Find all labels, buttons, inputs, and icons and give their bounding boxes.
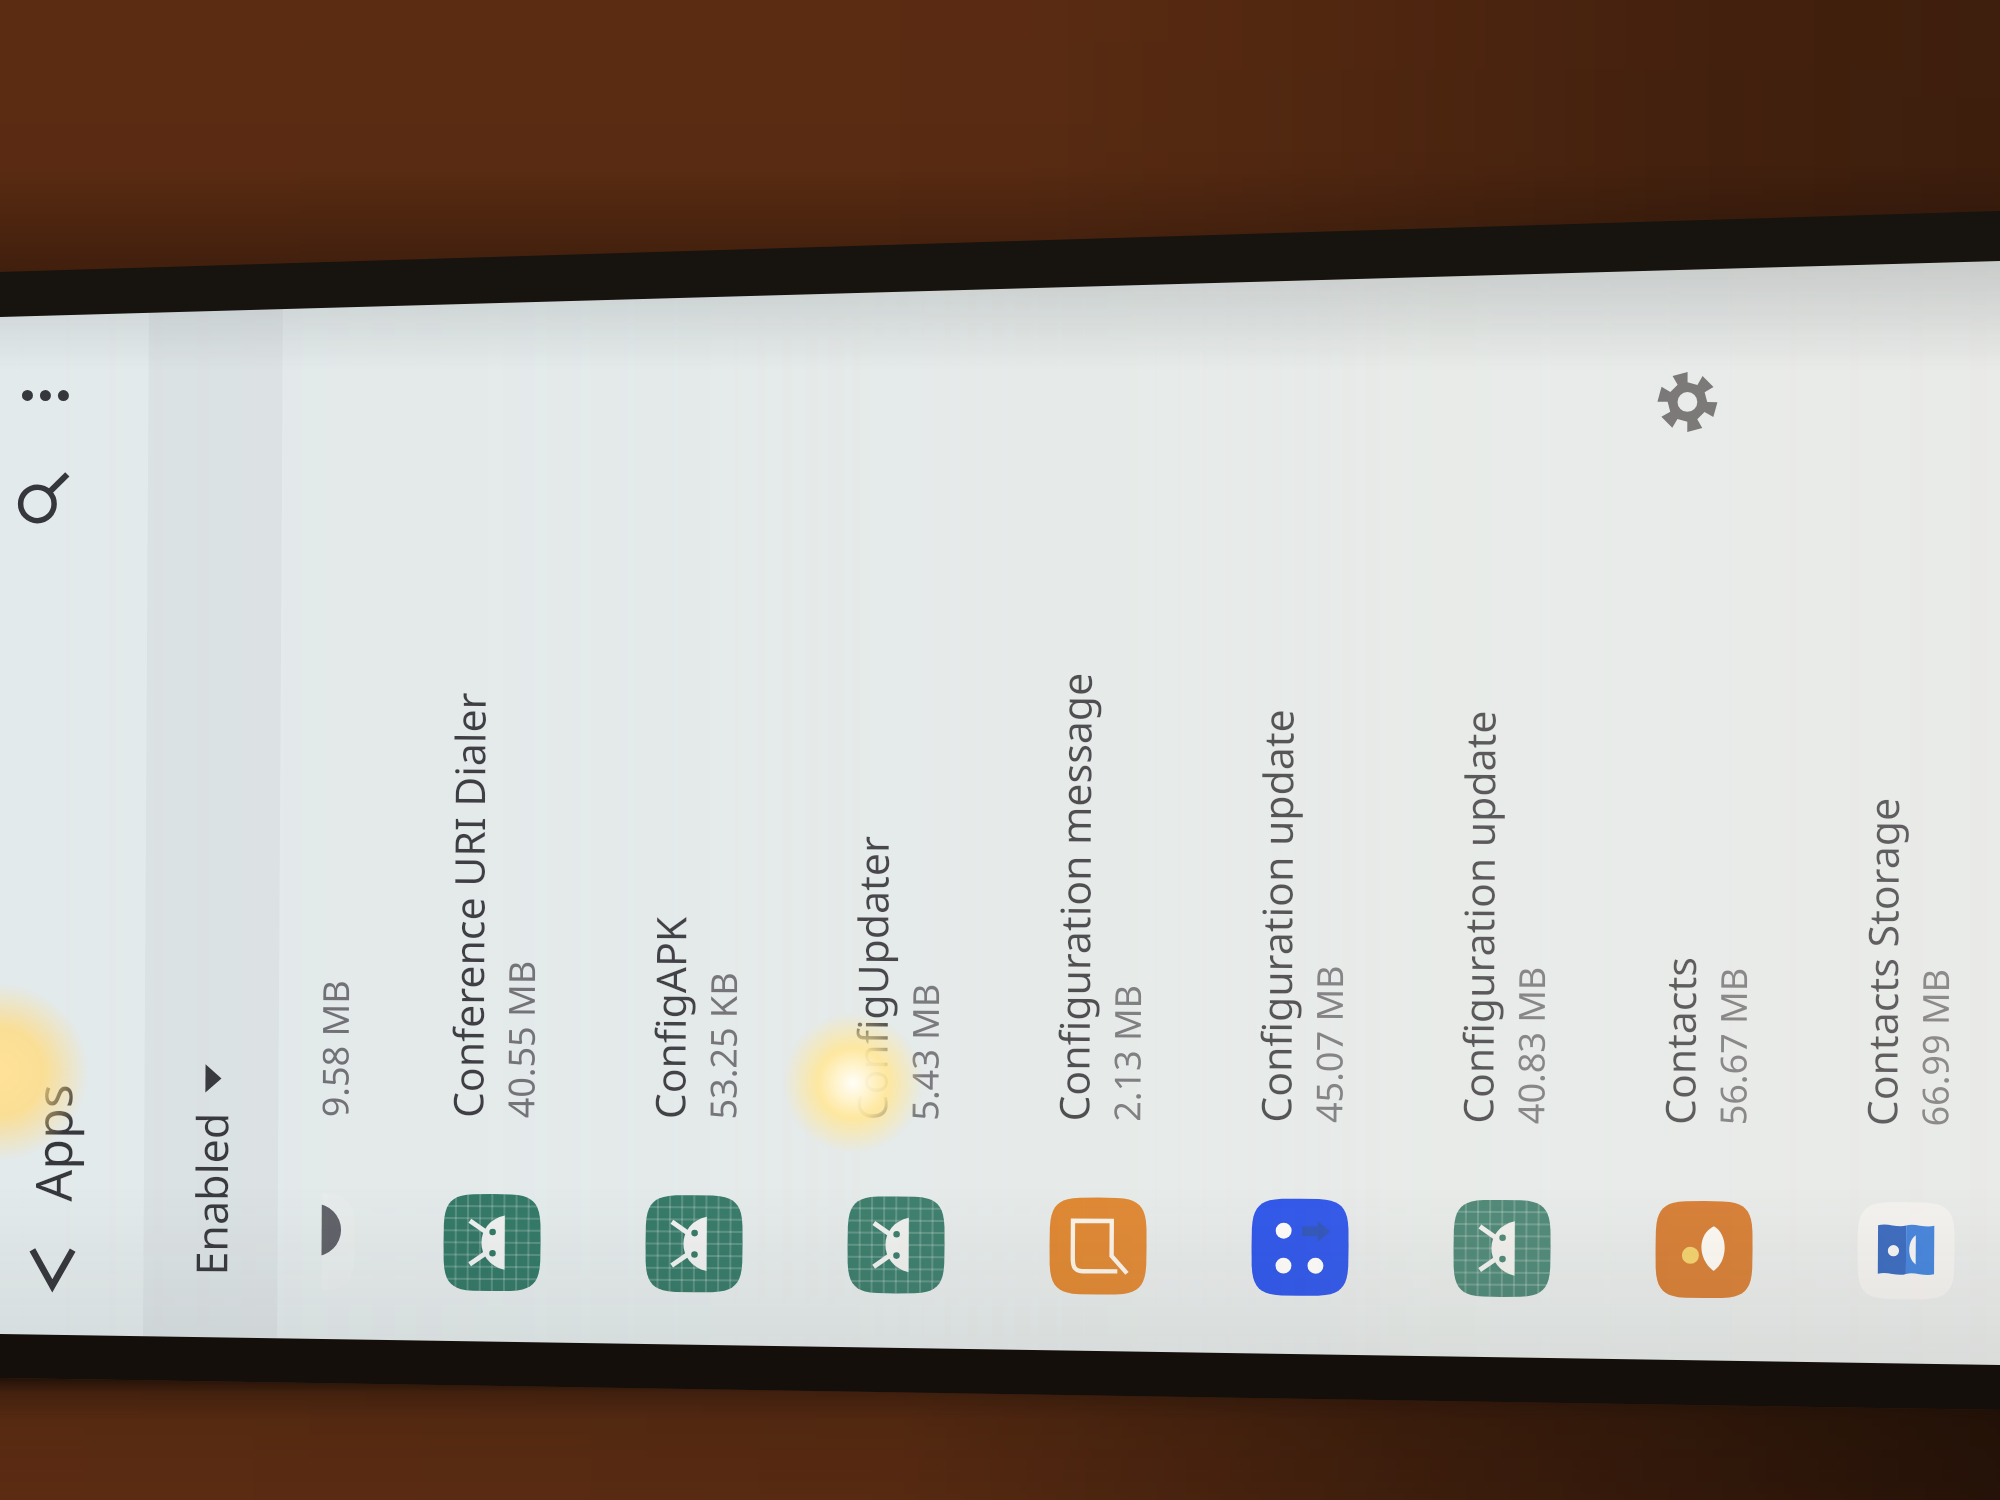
button[interactable]: Search — [0, 446, 95, 548]
staticText: Enabled — [181, 1112, 241, 1276]
staticText: 56.67 MB — [1708, 967, 1758, 1125]
button[interactable]: Contacts — [1602, 304, 1810, 1347]
staticText: 2.13 MB — [1102, 985, 1152, 1122]
button[interactable]: Apps — [18, 1083, 87, 1293]
button[interactable]: Configuration update — [1198, 302, 1406, 1344]
button[interactable]: Call settings — [321, 297, 412, 1339]
button[interactable]: Contacts Storage — [1804, 306, 2000, 1348]
staticText: ConfigAPK — [641, 916, 698, 1119]
button[interactable]: Configuration message — [996, 301, 1204, 1343]
button[interactable]: Settings — [1655, 370, 1720, 434]
staticText: ConfigUpdater — [843, 835, 901, 1120]
staticText: 9.58 MB — [322, 980, 360, 1117]
staticText: 66.99 MB — [1910, 968, 1960, 1127]
staticText: Configuration update — [1247, 708, 1306, 1123]
button[interactable]: ConfigAPK — [592, 299, 800, 1341]
button[interactable]: Enabled — [181, 1062, 242, 1276]
staticText: Conference URI Dialer — [439, 692, 498, 1118]
staticText: 53.25 KB — [698, 971, 748, 1120]
staticText: 40.55 MB — [496, 960, 546, 1118]
staticText: 40.83 MB — [1506, 966, 1556, 1124]
button[interactable]: ConfigUpdater — [794, 300, 1002, 1342]
staticText: 45.07 MB — [1304, 965, 1354, 1123]
staticText: Contacts — [1651, 957, 1708, 1125]
button[interactable]: Configuration update — [1400, 303, 1608, 1345]
staticText: Configuration update — [1449, 710, 1508, 1124]
button[interactable]: More options — [0, 345, 96, 447]
staticText: Configuration message — [1045, 672, 1104, 1122]
staticText: Contacts Storage — [1853, 797, 1911, 1126]
button[interactable]: Conference URI Dialer — [390, 297, 598, 1340]
staticText: Apps — [19, 1083, 87, 1202]
staticText: 5.43 MB — [900, 983, 950, 1121]
